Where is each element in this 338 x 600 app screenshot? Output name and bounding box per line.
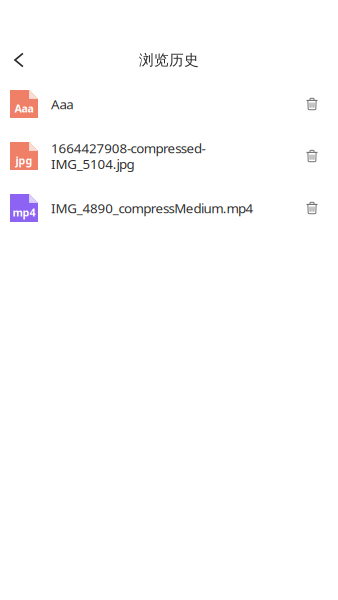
staticText: mp4	[12, 205, 35, 219]
button[interactable]: Delete 1664427908-compressed-IMG_5104.jp…	[295, 136, 329, 176]
button[interactable]: mp4	[0, 182, 295, 234]
staticText: 浏览历史	[139, 51, 199, 69]
staticText: 1664427908-compressed-IMG_5104.jpg	[51, 139, 206, 173]
button[interactable]: Aaa	[0, 78, 295, 130]
staticText: IMG_4890_compressMedium.mp4	[51, 199, 254, 217]
button[interactable]: Delete IMG_4890_compressMedium.mp4	[295, 188, 329, 228]
staticText: jpg	[15, 153, 32, 167]
staticText: Aaa	[51, 95, 73, 113]
staticText: Aaa	[14, 101, 33, 115]
button[interactable]: jpg	[0, 130, 295, 182]
button[interactable]: Back	[4, 43, 34, 77]
button[interactable]: Delete Aaa	[295, 84, 329, 124]
